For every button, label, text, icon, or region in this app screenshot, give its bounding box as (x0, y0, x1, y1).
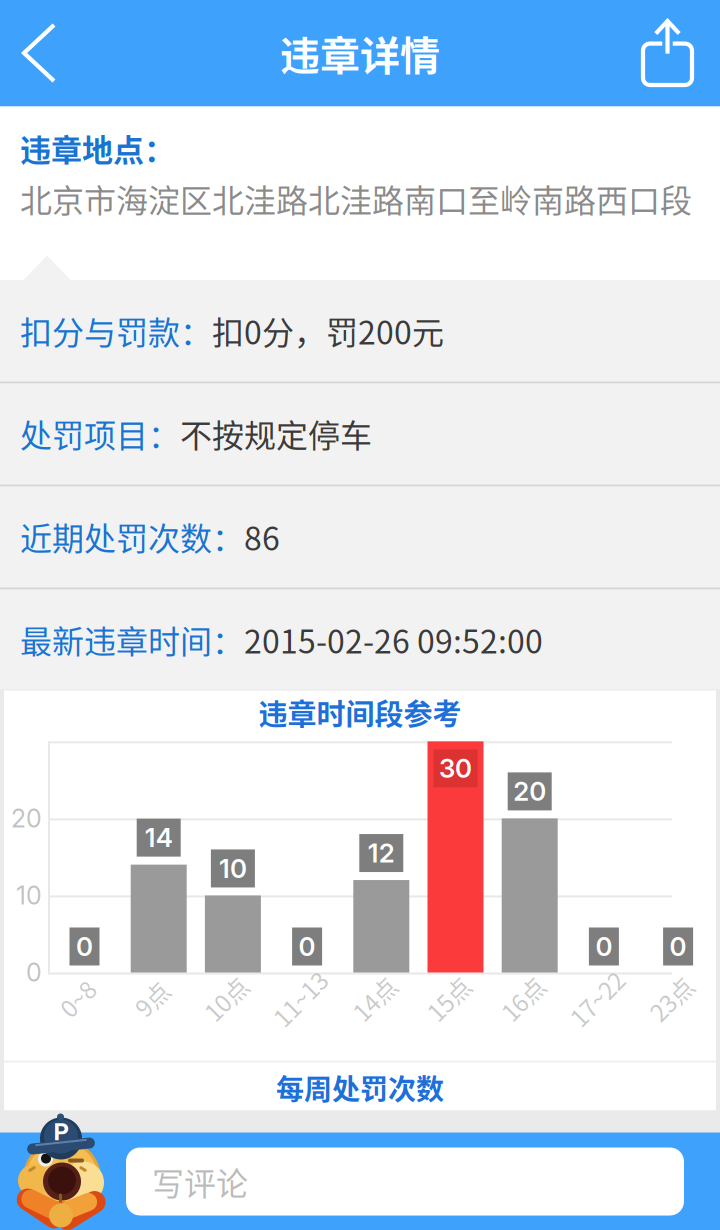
staticText: 0~8 (58, 981, 97, 1016)
staticText: 扣0分，罚200元 (212, 307, 444, 354)
button[interactable]: 处罚项目： (0, 383, 720, 483)
button[interactable]: Share (597, 0, 720, 106)
staticText: 10 (16, 880, 42, 910)
button[interactable]: 扣分与罚款： (0, 280, 720, 380)
staticText: 20 (513, 776, 546, 807)
staticText: 14 (145, 822, 173, 853)
button[interactable]: 写评论 (126, 1147, 684, 1215)
staticText: 0 (26, 957, 42, 988)
button[interactable]: 最新违章时间： (0, 589, 720, 689)
staticText: 违章时间段参考 (258, 691, 461, 733)
staticText: 17~22 (564, 981, 629, 1016)
button[interactable]: 近期处罚次数： (0, 486, 720, 586)
staticText: 20 (11, 803, 42, 833)
staticText: 10 (219, 853, 247, 884)
staticText: 86 (244, 513, 280, 560)
staticText: 0 (595, 931, 612, 962)
staticText: 不按规定停车 (180, 410, 372, 457)
staticText: 12 (368, 837, 395, 869)
button[interactable]: Back (0, 0, 100, 106)
staticText: 北京市海淀区北洼路北洼路南口至岭南路西口段 (20, 175, 692, 222)
staticText: 9点 (133, 981, 170, 1016)
staticText: 2015-02-26 09:52:00 (244, 616, 543, 663)
staticText: 0 (299, 931, 316, 962)
staticText: 写评论 (152, 1158, 248, 1205)
staticText: 0 (670, 931, 687, 962)
staticText: 11~13 (268, 981, 333, 1016)
staticText: P (53, 1117, 68, 1146)
staticText: 处罚项目： (20, 410, 180, 457)
staticText: 违章详情 (280, 24, 440, 82)
staticText: 16点 (498, 981, 548, 1016)
staticText: 15点 (423, 981, 473, 1016)
staticText: 23点 (646, 981, 696, 1016)
staticText: 最新违章时间： (20, 616, 244, 663)
staticText: 10点 (201, 981, 251, 1016)
staticText: 0 (76, 931, 93, 962)
button[interactable]: 每周处罚次数 (4, 1063, 716, 1111)
staticText: 违章地点： (20, 125, 175, 170)
staticText: 扣分与罚款： (20, 307, 212, 354)
staticText: 近期处罚次数： (20, 513, 244, 560)
staticText: 30 (439, 753, 472, 784)
staticText: 14点 (349, 981, 399, 1016)
staticText: 每周处罚次数 (276, 1067, 444, 1108)
